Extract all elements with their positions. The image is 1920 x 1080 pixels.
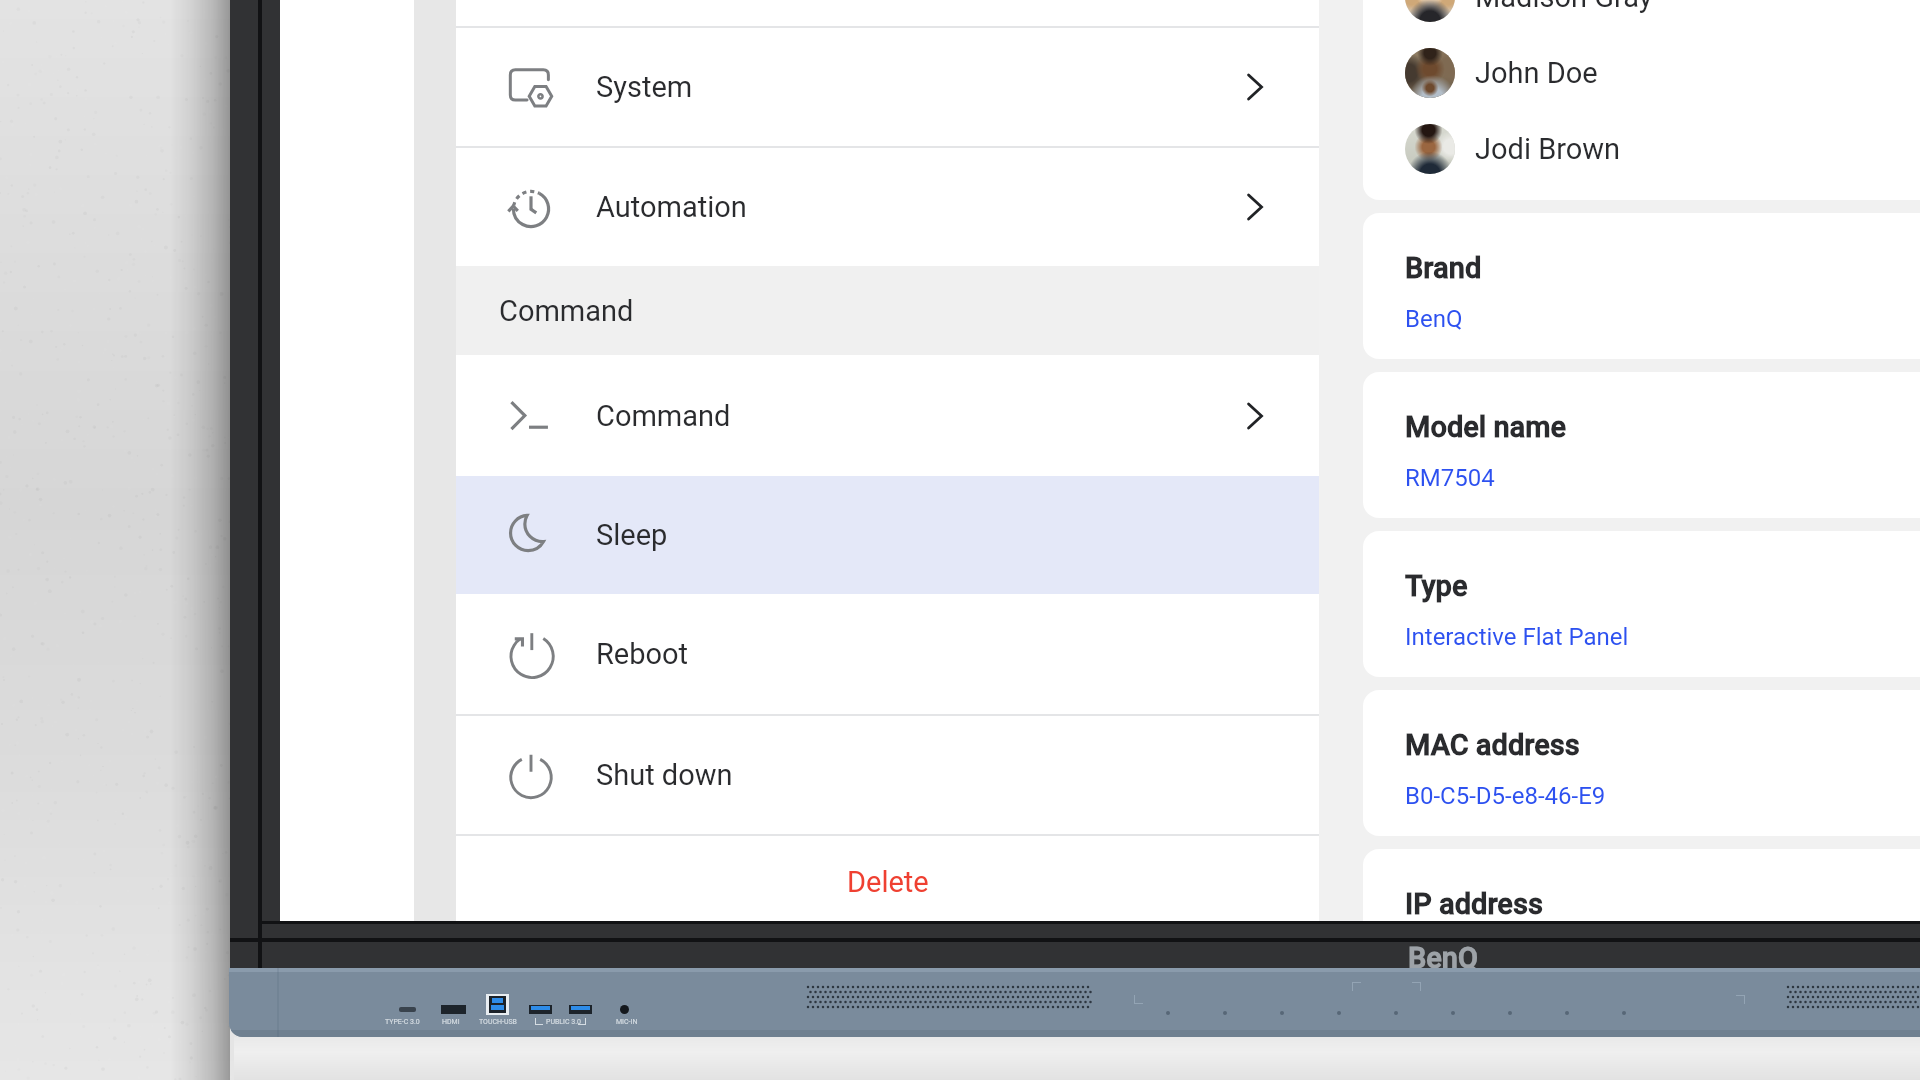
- staticText: MAC address: [1405, 728, 1580, 762]
- staticText: Command: [499, 294, 634, 328]
- staticText: Shut down: [596, 758, 733, 792]
- staticText: Interactive Flat Panel: [1405, 623, 1629, 651]
- staticText: MIC-IN: [616, 1018, 638, 1026]
- staticText: System: [596, 70, 693, 104]
- button[interactable]: Type: [1363, 531, 1920, 677]
- staticText: Automation: [596, 190, 747, 224]
- staticText: TOUCH-USB: [479, 1018, 517, 1026]
- button[interactable]: Brand: [1363, 213, 1920, 359]
- staticText: Model name: [1405, 410, 1567, 444]
- button[interactable]: Reboot: [456, 594, 1319, 714]
- button[interactable]: Delete: [456, 836, 1319, 921]
- staticText: John Doe: [1475, 56, 1598, 90]
- button[interactable]: Shut down: [456, 716, 1319, 834]
- staticText: HDMI: [442, 1018, 460, 1026]
- button[interactable]: John Doe: [1363, 35, 1920, 111]
- staticText: IP address: [1405, 887, 1543, 921]
- staticText: Brand: [1405, 251, 1482, 285]
- staticText: BenQ: [1408, 941, 1479, 975]
- button[interactable]: System: [456, 28, 1319, 146]
- staticText: Command: [596, 399, 731, 433]
- staticText: PUBLIC 3.0: [546, 1018, 581, 1026]
- staticText: RM7504: [1405, 464, 1495, 492]
- staticText: Sleep: [596, 518, 668, 552]
- staticText: Reboot: [596, 637, 689, 671]
- staticText: B0-C5-D5-e8-46-E9: [1405, 782, 1606, 810]
- button[interactable]: Command: [456, 355, 1319, 476]
- button[interactable]: Jodi Brown: [1363, 111, 1920, 187]
- button[interactable]: Model name: [1363, 372, 1920, 518]
- button[interactable]: IP address: [1363, 849, 1920, 921]
- button[interactable]: Automation: [456, 148, 1319, 266]
- staticText: TYPE-C 3.0: [385, 1018, 420, 1026]
- staticText: Madison Gray: [1475, 0, 1653, 14]
- staticText: Delete: [847, 865, 929, 899]
- button[interactable]: Madison Gray: [1363, 0, 1920, 35]
- staticText: Jodi Brown: [1475, 132, 1621, 166]
- button[interactable]: Sleep: [456, 476, 1319, 594]
- staticText: BenQ: [1405, 305, 1463, 333]
- button[interactable]: MAC address: [1363, 690, 1920, 836]
- staticText: Type: [1405, 569, 1468, 603]
